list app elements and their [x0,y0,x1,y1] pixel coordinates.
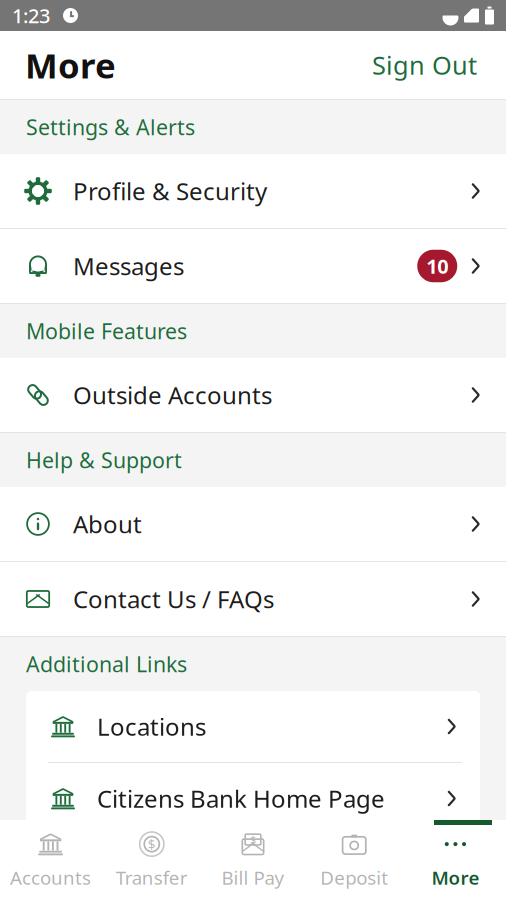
staticText: Contact Us / FAQs [73,583,274,615]
staticText: Mobile Features [26,317,187,345]
staticText: Messages [73,250,184,282]
button[interactable]: $ [202,820,304,900]
button[interactable]: Profile & Security [0,154,506,229]
staticText: Privacy & Security [97,855,298,886]
staticText: Additional Links [26,650,187,678]
staticText: Profile & Security [73,175,267,207]
staticText: $ [148,835,156,853]
staticText: Outside Accounts [73,379,272,411]
button[interactable]: Contact Us / FAQs [0,562,506,637]
button[interactable]: About [0,487,506,562]
button[interactable]: Outside Accounts [0,358,506,433]
staticText: Citizens Bank Home Page [97,783,385,814]
button[interactable]: Locations [26,691,480,763]
button[interactable]: Citizens Bank Home Page [26,763,480,835]
button[interactable]: Accounts [0,820,101,900]
staticText: Bill Pay [221,865,284,890]
staticText: More [25,42,116,88]
staticText: Settings & Alerts [26,113,195,141]
staticText: 1:23 [12,2,50,29]
staticText: Locations [97,711,206,742]
staticText: About [73,508,142,540]
staticText: Transfer [116,865,188,890]
staticText: More [431,865,479,890]
staticText: 10 [426,253,448,279]
button[interactable]: Messages [0,229,506,304]
staticText: Deposit [320,865,388,890]
button[interactable]: More [405,820,506,900]
button[interactable]: Deposit [304,820,405,900]
button[interactable]: Privacy & Security [26,835,480,900]
staticText: Accounts [10,865,91,890]
staticText: $ [250,832,256,847]
button[interactable]: $ [101,820,202,900]
button[interactable]: Sign Out [368,38,481,92]
staticText: Help & Support [26,446,182,474]
staticText: Sign Out [372,48,477,82]
